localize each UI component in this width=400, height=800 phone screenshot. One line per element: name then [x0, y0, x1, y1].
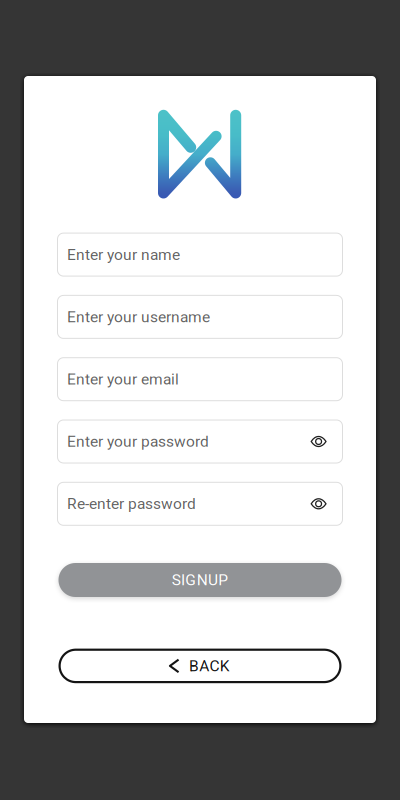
button[interactable]: BACK [58, 649, 341, 683]
staticText: Enter your password [67, 432, 209, 451]
staticText: Enter your email [67, 370, 179, 388]
button[interactable]: SIGNUP [58, 563, 341, 597]
staticText: Re-enter password [67, 495, 196, 513]
staticText: BACK [189, 657, 230, 675]
staticText: Enter your name [67, 245, 180, 264]
staticText: SIGNUP [172, 571, 228, 589]
staticText: Enter your username [67, 308, 210, 326]
